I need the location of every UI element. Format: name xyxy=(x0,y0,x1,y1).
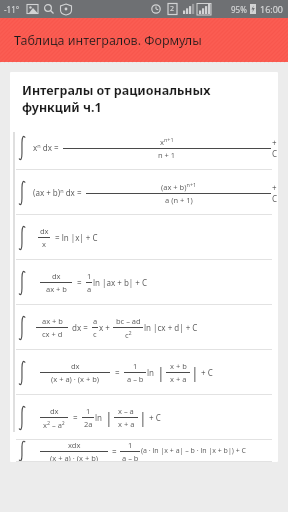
staticText: 1 xyxy=(86,406,91,416)
button[interactable]: Таблица интегралов. Формулы xyxy=(0,18,288,62)
staticText: ax + b xyxy=(46,284,67,294)
staticText: x – a xyxy=(118,406,134,416)
staticText: | xyxy=(157,363,165,382)
staticText: x + xyxy=(99,322,110,333)
button[interactable]: dx xyxy=(10,260,278,305)
staticText: ln xyxy=(147,367,155,378)
staticText: 1 xyxy=(128,440,133,450)
staticText: xn dx = xyxy=(33,142,59,153)
staticText: 2a xyxy=(84,419,93,429)
staticText: c xyxy=(93,329,97,339)
staticText: | xyxy=(191,363,199,382)
button[interactable]: ax + b xyxy=(10,305,278,350)
staticText: = xyxy=(77,277,82,288)
button[interactable]: dx xyxy=(10,350,278,395)
staticText: c2 xyxy=(125,329,132,340)
staticText: 95% xyxy=(231,4,247,15)
staticText: = xyxy=(115,367,120,378)
button[interactable]: xn dx = xyxy=(10,125,278,170)
staticText: 1 xyxy=(87,271,92,281)
button[interactable]: dx xyxy=(10,215,278,260)
button[interactable]: dx xyxy=(10,395,278,440)
staticText: dx = xyxy=(72,322,88,333)
staticText: a (n + 1) xyxy=(165,195,193,205)
staticText: x + a xyxy=(170,374,187,384)
staticText: dx xyxy=(71,361,80,371)
staticText: 16:00 xyxy=(260,3,284,15)
staticText: (ax + b)n dx = xyxy=(33,187,82,198)
staticText: (x + a) · (x + b) xyxy=(51,374,100,384)
staticText: x xyxy=(42,239,46,249)
staticText: a xyxy=(93,316,98,326)
staticText: Интегралы от рациональных функций ч.1 xyxy=(22,82,211,115)
staticText: | xyxy=(105,408,113,427)
staticText: (a · ln |x + a| – b · ln |x + b|) + C xyxy=(141,446,246,456)
staticText: cx + d xyxy=(42,329,63,339)
staticText: ln xyxy=(95,412,103,423)
staticText: 1 xyxy=(133,361,138,371)
staticText: x2 – a² xyxy=(43,419,65,430)
staticText: ax + b xyxy=(42,316,63,326)
button[interactable]: xdx xyxy=(10,440,278,462)
staticText: = xyxy=(73,412,78,423)
staticText: a – b xyxy=(122,453,139,462)
staticText: dx xyxy=(52,271,61,281)
staticText: (ax + b)n+1 xyxy=(161,181,197,192)
staticText: + C xyxy=(201,367,213,378)
staticText: dx xyxy=(50,406,59,416)
staticText: x + a xyxy=(118,419,135,429)
button[interactable]: (ax + b)n dx = xyxy=(10,170,278,215)
staticText: xn+1 xyxy=(160,136,174,147)
staticText: n + 1 xyxy=(158,150,176,160)
staticText: xdx xyxy=(68,440,81,450)
staticText: ln |ax + b| + C xyxy=(93,277,148,288)
staticText: Таблица интегралов. Формулы xyxy=(14,32,202,49)
staticText: | xyxy=(139,408,147,427)
staticText: ln |cx + d| + C xyxy=(144,322,198,333)
staticText: + C xyxy=(149,412,161,423)
staticText: a xyxy=(87,284,92,294)
staticText: a – b xyxy=(127,374,144,384)
staticText: -11° xyxy=(4,4,20,15)
staticText: x + b xyxy=(170,361,187,371)
staticText: dx xyxy=(40,226,49,236)
staticText: = xyxy=(112,446,117,457)
staticText: (x + a) · (x + b) xyxy=(50,453,99,462)
staticText: bc – ad xyxy=(116,316,141,326)
staticText: 2 xyxy=(170,4,175,14)
staticText: = ln |x| + C xyxy=(55,232,98,243)
